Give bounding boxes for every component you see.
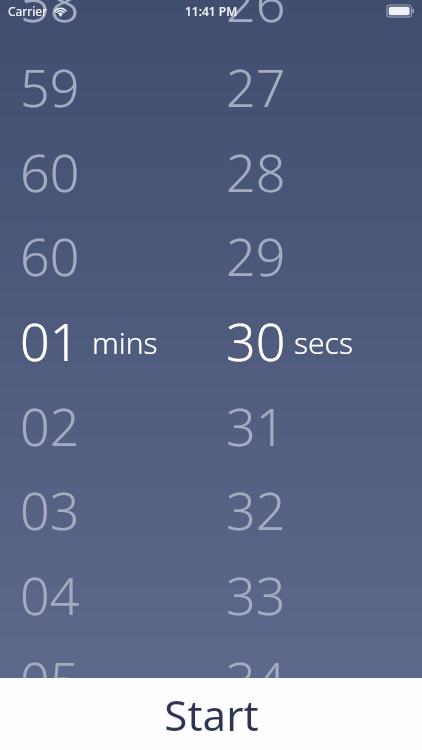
staticText: 60: [20, 220, 80, 290]
staticText: 05: [20, 644, 80, 678]
staticText: 58: [20, 0, 80, 36]
staticText: 26: [226, 0, 286, 36]
staticText: secs: [294, 322, 353, 363]
staticText: 33: [226, 559, 286, 629]
staticText: 34: [226, 644, 286, 678]
button[interactable]: Minutes picker: [0, 0, 200, 678]
staticText: 11:41 PM: [185, 3, 238, 19]
staticText: 30: [226, 305, 286, 375]
button[interactable]: Start: [0, 678, 422, 750]
staticText: 03: [20, 474, 80, 544]
staticText: 01: [20, 305, 80, 375]
button[interactable]: Seconds picker: [210, 0, 422, 678]
staticText: 04: [20, 559, 80, 629]
staticText: 32: [226, 474, 286, 544]
staticText: mins: [92, 322, 158, 363]
staticText: 27: [226, 51, 286, 121]
staticText: Start: [164, 686, 259, 743]
staticText: 31: [226, 390, 286, 460]
staticText: 02: [20, 390, 80, 460]
staticText: 59: [20, 51, 80, 121]
staticText: 60: [20, 136, 80, 206]
staticText: Carrier: [8, 3, 48, 19]
staticText: 29: [226, 220, 286, 290]
staticText: 28: [226, 136, 286, 206]
